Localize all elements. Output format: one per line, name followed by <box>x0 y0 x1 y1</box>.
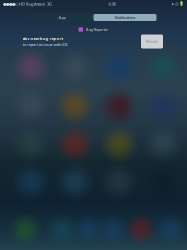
staticText: Notifications <box>114 15 135 20</box>
button[interactable]: Notifications <box>93 14 156 21</box>
button[interactable]: App <box>30 14 93 21</box>
button[interactable]: Review <box>141 34 163 48</box>
staticText: ▸ ⎙ 🔋 <box>172 2 184 6</box>
staticText: Review <box>146 39 158 44</box>
staticText: 6:38 <box>108 1 115 7</box>
staticText: App <box>58 15 65 20</box>
staticText: ●●●●○ HD Bug Attack 3G <box>3 1 52 7</box>
staticText: Bug Reporter <box>85 27 108 32</box>
staticText: abc new bug report <box>22 36 63 41</box>
staticText: to report an issue with iOS <box>22 42 67 47</box>
